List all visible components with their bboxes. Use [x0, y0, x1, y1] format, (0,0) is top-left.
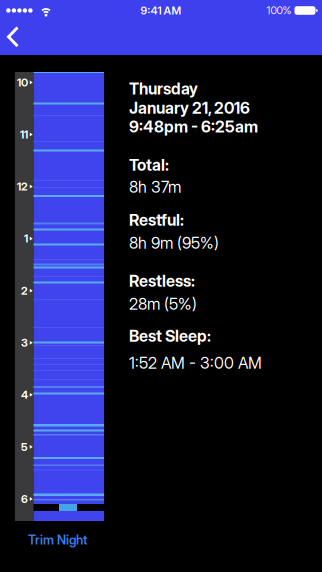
staticText: 4	[21, 388, 28, 401]
staticText: 8h 9m (95%)	[129, 233, 219, 253]
staticText: Thursday	[129, 79, 198, 98]
staticText: 8h 37m	[129, 177, 181, 197]
staticText: 12	[17, 180, 28, 193]
button[interactable]: Back	[0, 19, 29, 54]
staticText: January 21, 2016	[129, 98, 250, 118]
staticText: 10	[17, 76, 28, 89]
staticText: 9:41 AM	[140, 4, 181, 17]
staticText: Restful:	[129, 210, 184, 230]
staticText: 2	[21, 284, 28, 297]
staticText: Restless:	[129, 271, 195, 291]
staticText: 1	[24, 232, 28, 245]
staticText: 3	[21, 336, 28, 349]
staticText: Best Sleep:	[129, 326, 211, 346]
staticText: 28m (5%)	[129, 294, 197, 314]
staticText: Total:	[129, 155, 169, 175]
staticText: 9:48pm - 6:25am	[129, 117, 258, 136]
button[interactable]: Trim Night	[28, 532, 87, 548]
staticText: 6	[21, 492, 28, 506]
staticText: 5	[21, 440, 28, 453]
staticText: Trim Night	[28, 532, 87, 548]
staticText: 11	[20, 128, 28, 141]
staticText: 1:52 AM - 3:00 AM	[129, 353, 262, 373]
staticText: 100%	[266, 4, 291, 17]
